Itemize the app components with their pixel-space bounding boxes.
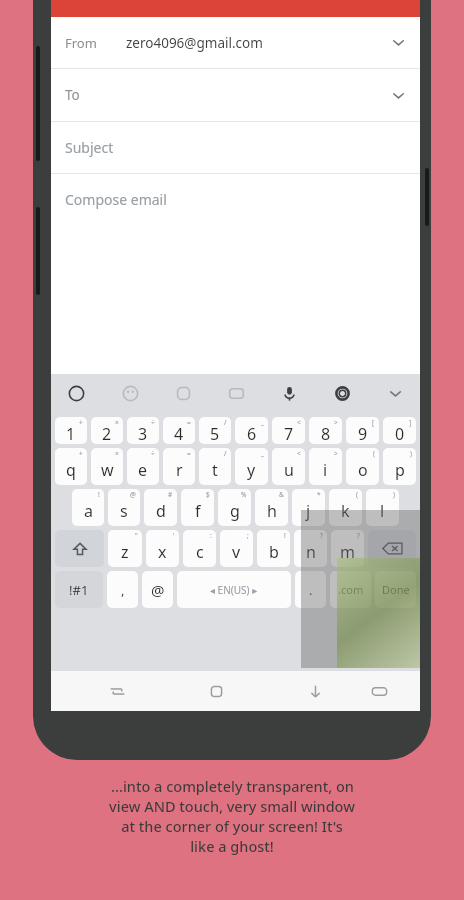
- button[interactable]: ": [108, 530, 142, 567]
- button[interactable]: @: [142, 571, 173, 608]
- staticText: @: [151, 580, 165, 600]
- button[interactable]: (: [346, 448, 379, 485]
- staticText: !#1: [69, 581, 89, 599]
- staticText: u: [284, 459, 294, 481]
- button[interactable]: Space: [177, 571, 291, 608]
- button[interactable]: Emoji: [115, 378, 145, 408]
- staticText: ": [135, 531, 138, 540]
- button[interactable]: *: [292, 489, 325, 526]
- button[interactable]: %: [218, 489, 251, 526]
- staticText: /: [224, 449, 227, 458]
- button[interactable]: ,: [107, 571, 138, 608]
- staticText: <: [297, 418, 301, 427]
- staticText: ...into a completely transparent, on: [111, 776, 354, 796]
- staticText: ;: [247, 531, 249, 540]
- button[interactable]: >: [309, 448, 342, 485]
- button[interactable]: &: [255, 489, 288, 526]
- button[interactable]: Settings: [327, 378, 357, 408]
- button[interactable]: ?: [331, 530, 364, 567]
- button[interactable]: /: [199, 417, 231, 444]
- staticText: i: [323, 459, 328, 481]
- button[interactable]: Collapse: [380, 378, 410, 408]
- staticText: From: [65, 34, 97, 52]
- staticText: >: [334, 449, 338, 458]
- button[interactable]: .com: [330, 571, 371, 608]
- button[interactable]: [: [346, 417, 379, 444]
- button[interactable]: !: [72, 489, 104, 526]
- button[interactable]: Done: [375, 571, 416, 608]
- button[interactable]: @: [108, 489, 140, 526]
- button[interactable]: ;: [220, 530, 253, 567]
- button[interactable]: #: [144, 489, 177, 526]
- button[interactable]: From: [51, 17, 420, 68]
- button[interactable]: >: [309, 417, 342, 444]
- button[interactable]: !#1: [55, 571, 103, 608]
- staticText: at the corner of your screen! It's: [121, 816, 343, 836]
- button[interactable]: Hide keyboard: [362, 674, 396, 708]
- button[interactable]: ): [366, 489, 399, 526]
- button[interactable]: <: [272, 448, 305, 485]
- staticText: ): [410, 449, 412, 458]
- staticText: %: [241, 490, 247, 499]
- button[interactable]: ×: [91, 417, 123, 444]
- staticText: ?: [357, 531, 360, 540]
- button[interactable]: ×: [91, 448, 123, 485]
- staticText: To: [65, 86, 80, 104]
- button[interactable]: =: [163, 448, 195, 485]
- button[interactable]: Home: [199, 674, 233, 708]
- staticText: .: [309, 581, 313, 599]
- button[interactable]: ?: [294, 530, 327, 567]
- button[interactable]: +: [55, 448, 87, 485]
- button[interactable]: To: [51, 69, 420, 121]
- staticText: v: [232, 541, 241, 563]
- button[interactable]: Subject: [51, 122, 420, 173]
- button[interactable]: Compose email: [51, 174, 420, 224]
- staticText: ×: [115, 418, 119, 427]
- button[interactable]: ]: [383, 417, 416, 444]
- button[interactable]: Voice input: [274, 378, 304, 408]
- staticText: Compose email: [65, 190, 167, 209]
- staticText: b: [269, 541, 279, 563]
- button[interactable]: !: [257, 530, 290, 567]
- staticText: zero4096@gmail.com: [126, 34, 263, 52]
- button[interactable]: ÷: [127, 448, 159, 485]
- button[interactable]: Text edit: [61, 378, 91, 408]
- staticText: 6: [247, 423, 257, 444]
- button[interactable]: Backspace: [368, 530, 416, 567]
- button[interactable]: /: [199, 448, 231, 485]
- staticText: 4: [174, 423, 184, 444]
- button[interactable]: +: [55, 417, 87, 444]
- button[interactable]: GIF: [221, 378, 251, 408]
- button[interactable]: :: [183, 530, 216, 567]
- staticText: :: [210, 531, 212, 540]
- staticText: _: [261, 449, 264, 458]
- staticText: a: [84, 500, 93, 522]
- button[interactable]: =: [163, 417, 195, 444]
- button[interactable]: (: [329, 489, 362, 526]
- staticText: !: [98, 490, 100, 499]
- button[interactable]: Shift: [55, 530, 104, 567]
- button[interactable]: ÷: [127, 417, 159, 444]
- staticText: h: [267, 500, 277, 522]
- staticText: d: [156, 500, 166, 522]
- staticText: ÷: [151, 449, 155, 458]
- button[interactable]: $: [181, 489, 214, 526]
- button[interactable]: Stickers: [168, 378, 198, 408]
- button[interactable]: _: [235, 417, 268, 444]
- button[interactable]: ): [383, 448, 416, 485]
- button[interactable]: _: [235, 448, 268, 485]
- staticText: ): [393, 490, 395, 499]
- staticText: c: [196, 541, 204, 563]
- button[interactable]: .: [295, 571, 326, 608]
- button[interactable]: <: [272, 417, 305, 444]
- staticText: Done: [382, 582, 410, 597]
- staticText: =: [187, 418, 191, 427]
- button[interactable]: Back: [298, 674, 332, 708]
- button[interactable]: Recents: [100, 674, 134, 708]
- staticText: Subject: [65, 138, 114, 157]
- staticText: [: [372, 418, 375, 427]
- button[interactable]: ': [146, 530, 179, 567]
- staticText: #: [168, 490, 173, 499]
- staticText: 1: [66, 423, 76, 444]
- staticText: f: [195, 500, 201, 522]
